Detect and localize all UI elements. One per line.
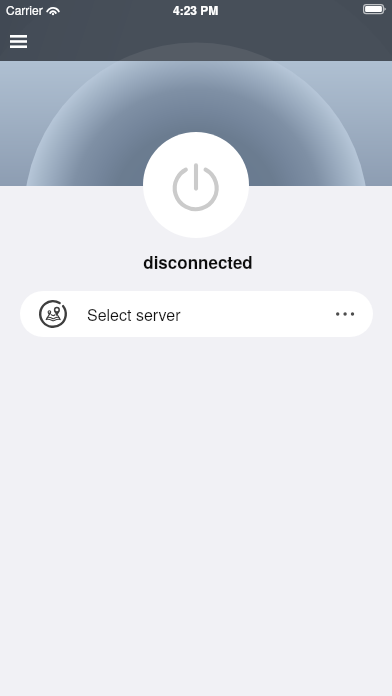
staticText: disconnected (2, 250, 392, 274)
button[interactable]: Open navigation menu (2, 25, 34, 57)
staticText: Carrier (6, 1, 43, 18)
button[interactable]: Connect (143, 132, 249, 238)
staticText: Select server (87, 303, 181, 326)
button[interactable]: Select server (20, 291, 373, 337)
other: More options (336, 311, 358, 317)
staticText: 4:23 PM (173, 1, 219, 18)
